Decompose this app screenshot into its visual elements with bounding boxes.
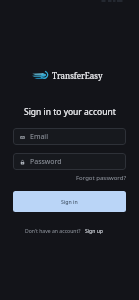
staticText: Email	[30, 132, 48, 142]
button[interactable]: Sign in	[13, 191, 126, 212]
staticText: Forgot password?	[76, 174, 127, 182]
button[interactable]: Sign up	[85, 228, 103, 235]
staticText: Don't have an account?	[25, 228, 81, 235]
staticText: Sign in to your account	[24, 106, 116, 118]
button[interactable]: Email	[13, 128, 126, 145]
button[interactable]: Forgot password?	[76, 174, 127, 182]
staticText: Sign up	[85, 228, 103, 235]
button[interactable]: Password	[13, 153, 126, 170]
staticText: TransferEasy	[52, 70, 103, 81]
other: TransferEasy logo	[32, 70, 48, 81]
staticText: Password	[30, 157, 62, 167]
staticText: Sign in	[61, 198, 78, 205]
